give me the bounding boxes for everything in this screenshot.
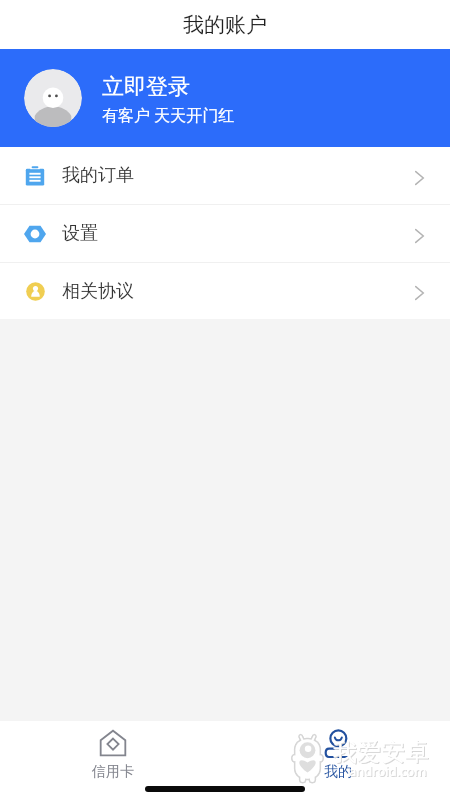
staticText: android.com bbox=[350, 763, 428, 781]
button[interactable]: 设置 bbox=[0, 205, 450, 262]
button[interactable]: Credit card bbox=[0, 721, 225, 800]
button[interactable]: 相关协议 bbox=[0, 263, 450, 319]
staticText: 我的订单 bbox=[62, 164, 134, 187]
staticText: 设置 bbox=[62, 222, 98, 245]
button[interactable]: My account bbox=[225, 721, 450, 800]
staticText: 相关协议 bbox=[62, 280, 134, 303]
staticText: 我的 bbox=[324, 763, 352, 781]
button[interactable]: 我的订单 bbox=[0, 147, 450, 204]
staticText: android.com bbox=[349, 762, 427, 780]
other: Credit card bbox=[99, 729, 127, 757]
staticText: 立即登录 bbox=[102, 73, 190, 101]
staticText: 我的账户 bbox=[183, 12, 267, 38]
staticText: 有客户 天天开门红 bbox=[102, 104, 235, 126]
staticText: 我爱安卓 bbox=[333, 737, 429, 767]
button[interactable]: 立即登录 bbox=[0, 49, 450, 147]
other: My account bbox=[324, 729, 352, 757]
staticText: 我爱安卓 bbox=[334, 738, 430, 768]
staticText: 信用卡 bbox=[92, 763, 134, 781]
